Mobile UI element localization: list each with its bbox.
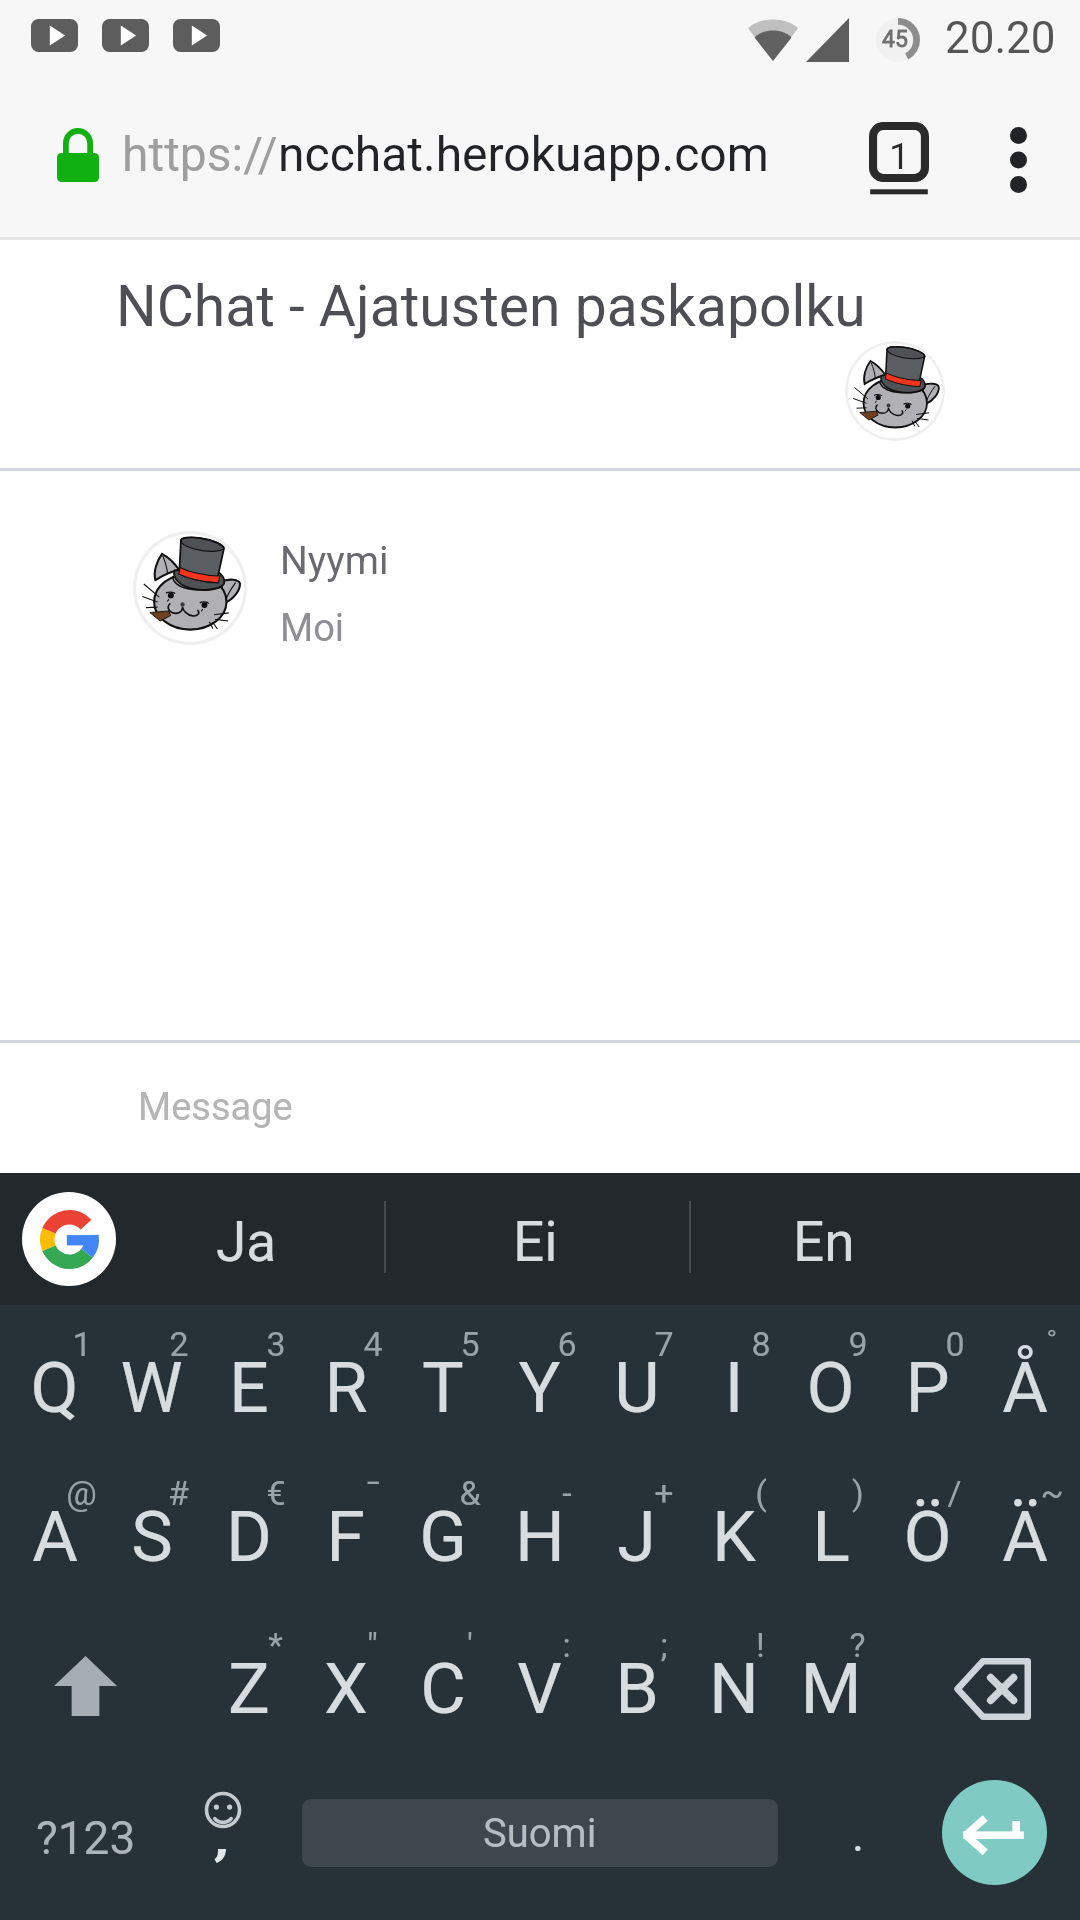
button[interactable]: K <box>685 1441 782 1587</box>
staticText: N <box>709 1648 759 1730</box>
staticText: A <box>32 1496 78 1578</box>
staticText: Ö <box>903 1496 952 1578</box>
staticText: & <box>459 1473 481 1513</box>
staticText: Ä <box>1002 1496 1048 1578</box>
button[interactable]: . <box>800 1761 916 1920</box>
staticText: V <box>517 1648 562 1730</box>
button[interactable]: Message <box>0 1043 1080 1173</box>
button[interactable]: V <box>491 1593 588 1739</box>
staticText: Moi <box>280 606 345 651</box>
staticText: Ei <box>513 1210 558 1274</box>
staticText: Å <box>1002 1347 1048 1429</box>
staticText: K <box>712 1496 756 1578</box>
button[interactable]: En <box>734 1176 914 1308</box>
staticText: ˚ <box>1046 1324 1058 1364</box>
button[interactable]: ?123 <box>0 1761 171 1920</box>
button[interactable]: W <box>103 1292 200 1438</box>
staticText: E <box>229 1347 269 1429</box>
button[interactable]: X <box>297 1593 394 1739</box>
staticText: ) <box>852 1473 864 1513</box>
button[interactable]: More options <box>974 116 1062 204</box>
staticText: 2 <box>169 1324 189 1364</box>
staticText: M <box>800 1648 862 1730</box>
button[interactable]: S <box>103 1441 200 1587</box>
button[interactable]: Tabs <box>844 122 954 232</box>
staticText: ¯ <box>365 1473 381 1513</box>
staticText: 9 <box>848 1324 868 1364</box>
button[interactable]: Enter <box>942 1780 1047 1885</box>
button[interactable]: Z <box>200 1593 297 1739</box>
button[interactable]: N <box>685 1593 782 1739</box>
button[interactable]: Ei <box>445 1176 625 1308</box>
staticText: # <box>168 1473 189 1513</box>
button[interactable]: M <box>782 1593 879 1739</box>
staticText: L <box>812 1496 850 1578</box>
button[interactable]: D <box>200 1441 297 1587</box>
staticText: X <box>324 1648 368 1730</box>
button[interactable]: P <box>879 1292 976 1438</box>
staticText: ?123 <box>36 1811 136 1865</box>
button[interactable]: I <box>685 1292 782 1438</box>
staticText: ' <box>467 1625 473 1665</box>
button[interactable]: Y <box>491 1292 588 1438</box>
button[interactable]: Nyymi <box>133 531 389 651</box>
button[interactable]: Emoji <box>173 1773 269 1920</box>
staticText: / <box>947 1473 962 1513</box>
button[interactable]: Google <box>22 1192 116 1286</box>
button[interactable]: Q <box>6 1292 103 1438</box>
staticText: O <box>806 1347 855 1429</box>
staticText: + <box>654 1473 674 1513</box>
button[interactable]: T <box>394 1292 491 1438</box>
button[interactable]: Ö <box>879 1441 976 1587</box>
staticText: 7 <box>654 1324 674 1364</box>
staticText: " <box>367 1625 378 1665</box>
staticText: * <box>268 1625 283 1665</box>
button[interactable]: C <box>394 1593 491 1739</box>
staticText: W <box>120 1347 183 1429</box>
button[interactable]: F <box>297 1441 394 1587</box>
staticText: J <box>617 1496 656 1578</box>
button[interactable]: R <box>297 1292 394 1438</box>
button[interactable]: U <box>588 1292 685 1438</box>
staticText: ~ <box>1040 1473 1064 1513</box>
staticText: 20.20 <box>945 12 1056 64</box>
staticText: Message <box>138 1085 293 1130</box>
button[interactable]: J <box>588 1441 685 1587</box>
staticText: Q <box>30 1347 79 1429</box>
button[interactable]: H <box>491 1441 588 1587</box>
staticText: ; <box>660 1625 668 1665</box>
staticText: Y <box>518 1347 561 1429</box>
staticText: : <box>562 1625 571 1665</box>
staticText: T <box>422 1347 464 1429</box>
staticText: 6 <box>557 1324 577 1364</box>
button[interactable]: L <box>782 1441 879 1587</box>
staticText: 5 <box>460 1324 480 1364</box>
staticText: NChat - Ajatusten paskapolku <box>116 273 866 340</box>
button[interactable]: E <box>200 1292 297 1438</box>
button[interactable]: A <box>6 1441 103 1587</box>
button[interactable]: Shift <box>0 1613 184 1759</box>
staticText: ( <box>755 1473 767 1513</box>
staticText: R <box>324 1347 368 1429</box>
staticText: P <box>905 1347 950 1429</box>
button[interactable]: B <box>588 1593 685 1739</box>
staticText: @ <box>66 1473 97 1513</box>
staticText: I <box>724 1347 744 1429</box>
button[interactable]: Å <box>976 1292 1073 1438</box>
staticText: D <box>226 1496 272 1578</box>
button[interactable]: G <box>394 1441 491 1587</box>
staticText: Z <box>228 1648 270 1730</box>
staticText: G <box>419 1496 467 1578</box>
staticText: 1 <box>72 1324 92 1364</box>
staticText: 0 <box>945 1324 965 1364</box>
button[interactable]: Backspace <box>893 1616 1080 1762</box>
button[interactable]: Ä <box>976 1441 1073 1587</box>
button[interactable]: Suomi <box>302 1799 778 1867</box>
staticText: . <box>852 1808 865 1862</box>
staticText: ? <box>849 1625 866 1665</box>
button[interactable]: Ja <box>156 1176 336 1308</box>
staticText: Suomi <box>483 1810 597 1857</box>
button[interactable]: Profile <box>845 341 945 441</box>
button[interactable]: O <box>782 1292 879 1438</box>
staticText: 8 <box>751 1324 771 1364</box>
